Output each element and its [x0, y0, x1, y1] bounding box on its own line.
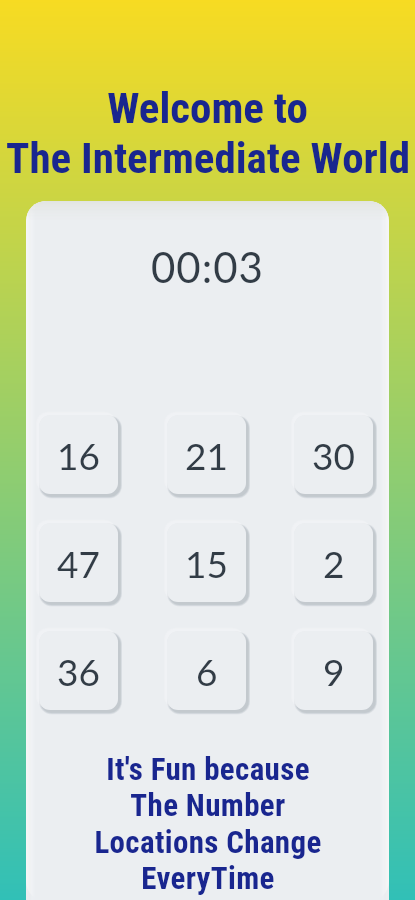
staticText: 6 [196, 649, 218, 693]
button[interactable]: 36 [39, 631, 118, 710]
button[interactable]: 15 [167, 523, 246, 602]
staticText: The Number [130, 787, 286, 823]
staticText: 16 [57, 433, 100, 477]
button[interactable]: 2 [294, 523, 373, 602]
staticText: Welcome to [107, 83, 308, 133]
staticText: Locations Change [94, 824, 322, 860]
staticText: It's Fun because [106, 751, 310, 787]
button[interactable]: 16 [39, 415, 118, 494]
staticText: 9 [323, 649, 345, 693]
staticText: 21 [185, 433, 228, 477]
button[interactable]: 30 [294, 415, 373, 494]
button[interactable]: 9 [294, 631, 373, 710]
staticText: 36 [57, 649, 100, 693]
staticText: 2 [323, 541, 345, 585]
staticText: 00:03 [151, 242, 264, 292]
button[interactable]: 6 [167, 631, 246, 710]
staticText: The Intermediate World [6, 133, 410, 183]
button[interactable]: 21 [167, 415, 246, 494]
staticText: 15 [185, 541, 228, 585]
staticText: 30 [312, 433, 355, 477]
staticText: 47 [57, 541, 100, 585]
staticText: EveryTime [141, 860, 275, 896]
button[interactable]: 47 [39, 523, 118, 602]
